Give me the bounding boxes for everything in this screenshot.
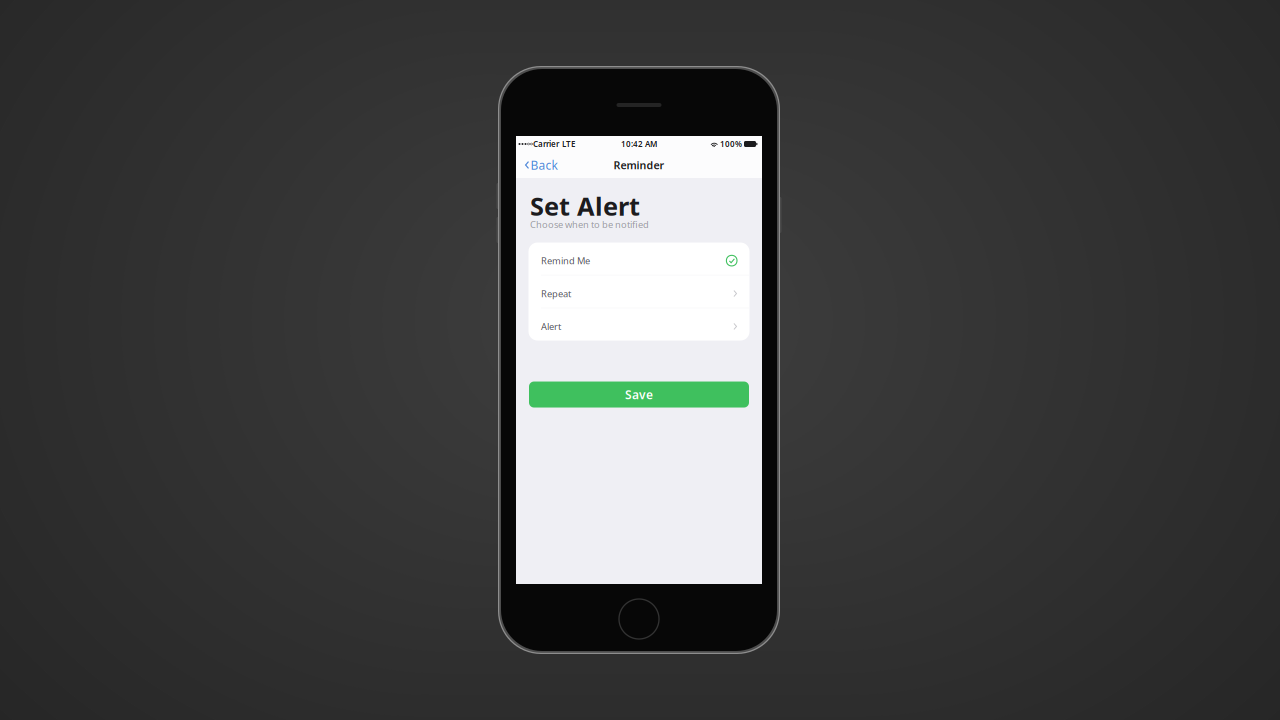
staticText: 100%: [720, 139, 742, 149]
staticText: 10:42 AM: [621, 139, 657, 149]
staticText: Save: [625, 387, 653, 402]
staticText: Alert: [541, 320, 561, 333]
staticText: Set Alert: [530, 189, 640, 223]
staticText: Carrier: [533, 139, 559, 149]
staticText: Choose when to be notified: [530, 218, 649, 230]
staticText: Repeat: [541, 287, 571, 300]
button[interactable]: Back: [516, 152, 566, 178]
button[interactable]: Save: [529, 381, 749, 407]
staticText: Back: [530, 157, 557, 173]
staticText: LTE: [562, 139, 575, 149]
button[interactable]: Remind Me: [529, 242, 749, 275]
button[interactable]: Repeat: [529, 275, 749, 308]
staticText: Reminder: [613, 158, 664, 172]
button[interactable]: Alert: [529, 308, 749, 340]
staticText: Remind Me: [541, 254, 590, 267]
